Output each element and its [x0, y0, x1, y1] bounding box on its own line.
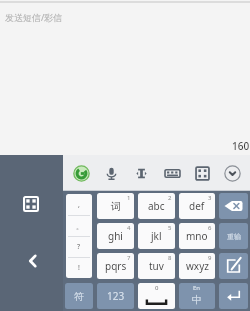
- button[interactable]: Backspace: [219, 193, 248, 219]
- staticText: 0: [155, 284, 159, 292]
- staticText: mno: [186, 229, 208, 243]
- staticText: abc: [148, 199, 165, 213]
- staticText: ,: [78, 200, 80, 210]
- button[interactable]: Space: [138, 283, 175, 309]
- staticText: pqrs: [105, 259, 127, 273]
- staticText: 8: [168, 254, 172, 262]
- button[interactable]: pqrs: [97, 253, 134, 279]
- staticText: tuv: [149, 259, 164, 273]
- button[interactable]: !: [66, 258, 92, 278]
- button[interactable]: Handwriting: [219, 253, 248, 279]
- staticText: 发送短信/彩信: [5, 11, 63, 23]
- staticText: 9: [208, 254, 212, 262]
- staticText: 7: [127, 254, 131, 262]
- staticText: 4: [127, 224, 131, 232]
- staticText: 词: [111, 200, 121, 213]
- button[interactable]: Switch language: [179, 283, 215, 309]
- button[interactable]: ,: [66, 194, 92, 215]
- button[interactable]: 重输: [219, 223, 248, 249]
- button[interactable]: 123: [97, 283, 134, 309]
- button[interactable]: Voice input: [99, 161, 123, 185]
- button[interactable]: Enter: [219, 283, 248, 309]
- button[interactable]: abc: [138, 193, 175, 219]
- staticText: 160: [232, 139, 250, 153]
- button[interactable]: ?: [66, 237, 92, 257]
- staticText: ?: [77, 242, 81, 252]
- button[interactable]: mno: [179, 223, 215, 249]
- staticText: ghi: [108, 229, 123, 243]
- staticText: wxyz: [186, 259, 209, 273]
- staticText: 符: [74, 290, 84, 303]
- staticText: def: [189, 199, 205, 213]
- staticText: 6: [208, 224, 212, 232]
- staticText: 1: [127, 194, 131, 202]
- staticText: 重输: [227, 232, 241, 241]
- staticText: En: [193, 284, 201, 292]
- button[interactable]: jkl: [138, 223, 175, 249]
- button[interactable]: Back: [25, 253, 41, 269]
- staticText: jkl: [151, 229, 162, 243]
- button[interactable]: Keyboard layouts: [23, 196, 39, 212]
- staticText: 3: [208, 194, 212, 202]
- button[interactable]: 。: [66, 216, 92, 236]
- button[interactable]: Move cursor: [129, 161, 153, 185]
- staticText: 中: [192, 293, 202, 306]
- button[interactable]: Keyboard: [160, 161, 184, 185]
- button[interactable]: 词: [97, 193, 134, 219]
- staticText: 。: [76, 222, 83, 231]
- button[interactable]: tuv: [138, 253, 175, 279]
- button[interactable]: Hide keyboard: [220, 161, 244, 185]
- button[interactable]: 符: [65, 283, 93, 309]
- staticText: !: [78, 263, 80, 273]
- button[interactable]: ghi: [97, 223, 134, 249]
- button[interactable]: Panel: [190, 161, 214, 185]
- staticText: 5: [168, 224, 172, 232]
- button[interactable]: wxyz: [179, 253, 215, 279]
- staticText: 2: [168, 194, 172, 202]
- button[interactable]: def: [179, 193, 215, 219]
- button[interactable]: Sogou input: [69, 161, 93, 185]
- staticText: 123: [107, 289, 125, 303]
